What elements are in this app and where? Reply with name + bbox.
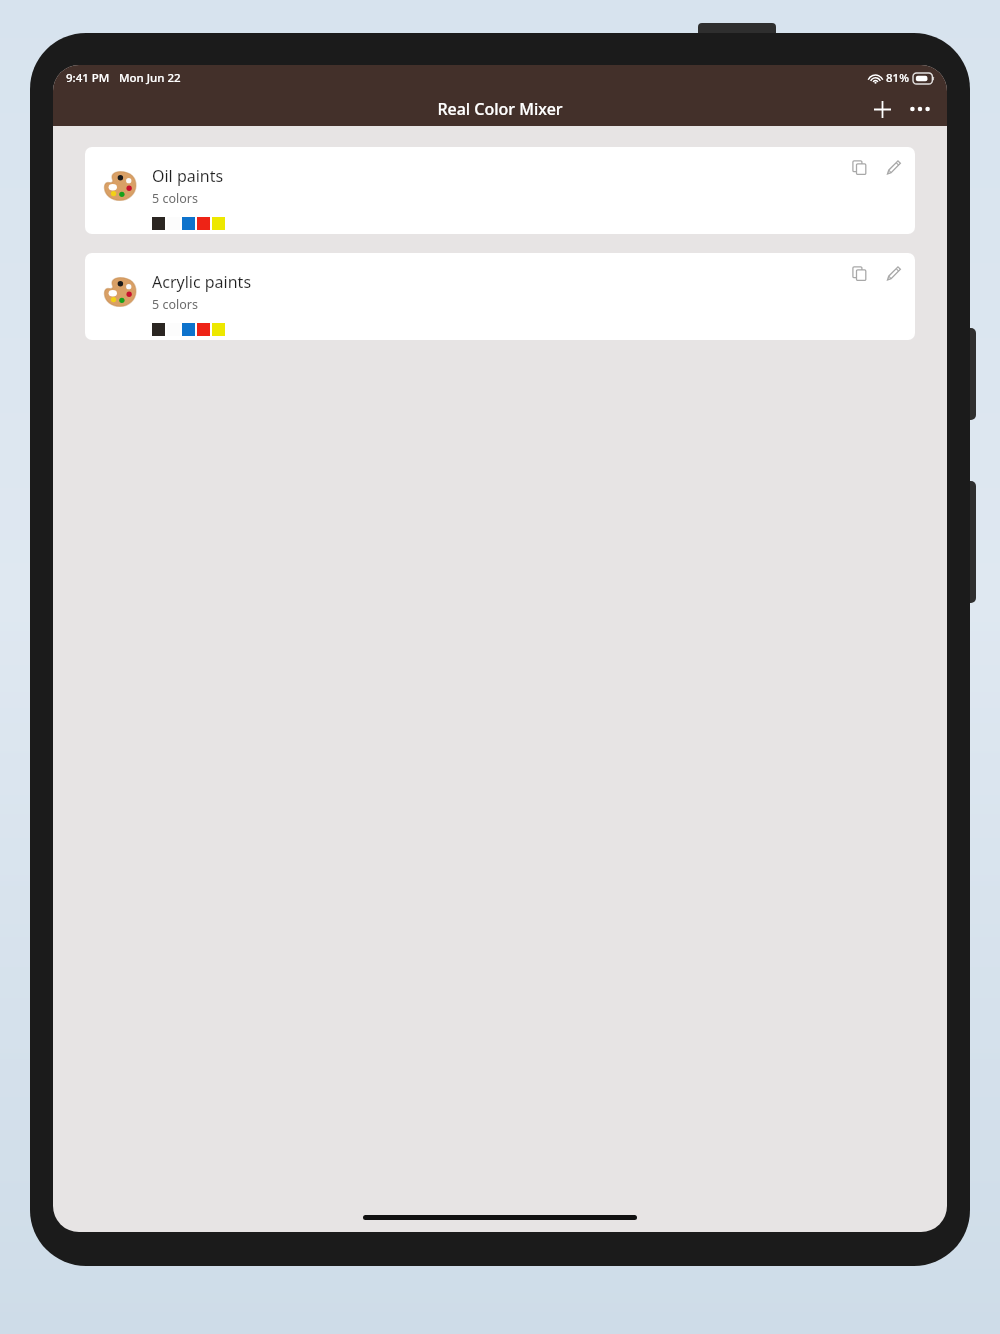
staticText: Acrylic paints [152, 271, 252, 293]
button[interactable]: Add palette [865, 92, 899, 126]
staticText: Mon Jun 22 [119, 70, 181, 86]
staticText: 5 colors [152, 296, 198, 313]
staticText: Oil paints [152, 165, 224, 187]
staticText: Real Color Mixer [437, 98, 563, 120]
button[interactable]: Acrylic paints [85, 253, 915, 340]
button[interactable]: Edit [877, 151, 909, 183]
button[interactable]: Edit [877, 257, 909, 289]
staticText: 5 colors [152, 190, 198, 207]
staticText: 81% [886, 70, 909, 86]
button[interactable]: Oil paints [85, 147, 915, 234]
button[interactable]: More options [903, 92, 937, 126]
staticText: 9:41 PM [66, 70, 110, 86]
button[interactable]: Duplicate [843, 151, 875, 183]
button[interactable]: Duplicate [843, 257, 875, 289]
